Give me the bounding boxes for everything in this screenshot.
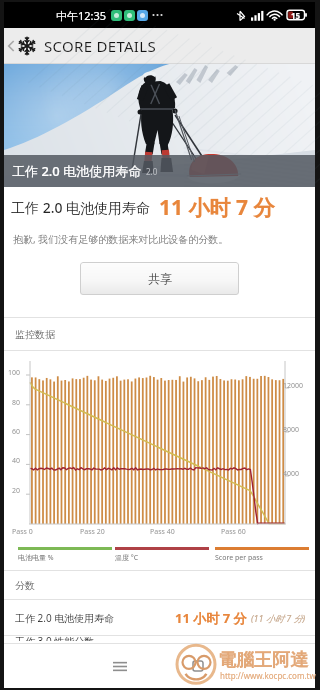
staticText: Pass 40: [150, 527, 175, 537]
button[interactable]: 工作 2.0 电池使用寿命: [4, 600, 315, 635]
staticText: 4000: [283, 469, 300, 479]
staticText: 100: [8, 368, 21, 378]
button[interactable]: Recents: [81, 644, 159, 688]
staticText: 80: [12, 398, 21, 408]
staticText: 分数: [15, 579, 35, 592]
staticText: 工作 2.0 电池使用寿命: [11, 198, 151, 217]
staticText: 60: [12, 427, 21, 437]
staticText: 15: [291, 10, 301, 21]
staticText: 工作 2.0 电池使用寿命: [15, 611, 115, 625]
button[interactable]: Back: [4, 28, 18, 64]
staticText: 8000: [283, 425, 300, 435]
staticText: Pass 60: [221, 527, 246, 537]
staticText: 温度 °C: [115, 553, 139, 563]
staticText: 12000: [283, 381, 304, 391]
staticText: SCORE DETAILS: [44, 36, 156, 56]
staticText: Pass 0: [12, 527, 33, 537]
staticText: Pass 20: [80, 527, 105, 537]
staticText: 11 小时 7 分: [175, 609, 247, 627]
staticText: 11 小时 7 分: [159, 193, 275, 222]
staticText: 监控数据: [15, 328, 55, 341]
staticText: 电池电量 %: [18, 553, 54, 563]
staticText: 抱歉, 我们没有足够的数据来对比此设备的分数。: [13, 232, 229, 246]
button[interactable]: Home: [159, 644, 237, 688]
staticText: 20: [12, 486, 21, 496]
staticText: http://www.kocpc.com.tw: [220, 670, 316, 681]
staticText: 工作 2.0 电池使用寿命: [12, 162, 142, 180]
button[interactable]: 共享: [80, 262, 239, 295]
staticText: Score per pass: [215, 553, 263, 563]
staticText: 共享: [148, 271, 172, 286]
staticText: 40: [12, 456, 21, 466]
staticText: 2.0: [146, 166, 158, 177]
staticText: 中午12:35: [56, 8, 107, 23]
staticText: (11 小时 7 分): [251, 612, 306, 624]
staticText: 電腦王阿達: [218, 649, 308, 672]
staticText: 工作 3.0 性能分数: [15, 634, 95, 641]
